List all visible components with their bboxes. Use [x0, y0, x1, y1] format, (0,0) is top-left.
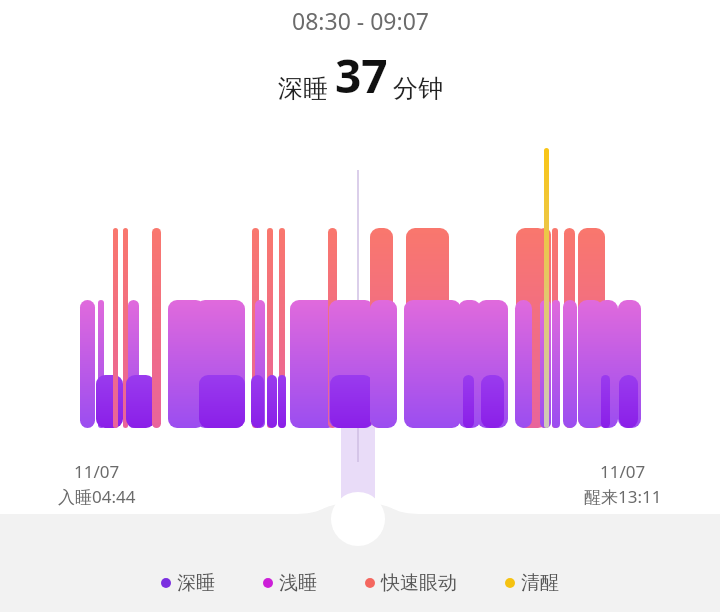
button[interactable]: 浅睡: [261, 566, 319, 600]
staticText: 醒来13:11: [584, 485, 662, 508]
staticText: 11/07: [74, 460, 120, 483]
staticText: 浅睡: [279, 571, 317, 595]
staticText: 入睡04:44: [58, 485, 136, 508]
staticText: 11/07: [600, 460, 646, 483]
button[interactable]: 清醒: [503, 566, 561, 600]
staticText: 深睡: [177, 571, 215, 595]
staticText: 清醒: [521, 571, 559, 595]
staticText: 快速眼动: [381, 571, 457, 595]
staticText: 37: [335, 44, 388, 107]
staticText: 分钟: [393, 73, 443, 104]
other: Timeline scrubber: [0, 0, 720, 612]
button[interactable]: 深睡: [159, 566, 217, 600]
staticText: 深睡: [278, 73, 328, 104]
staticText: 08:30 - 09:07: [292, 5, 429, 36]
button[interactable]: 快速眼动: [363, 566, 459, 600]
